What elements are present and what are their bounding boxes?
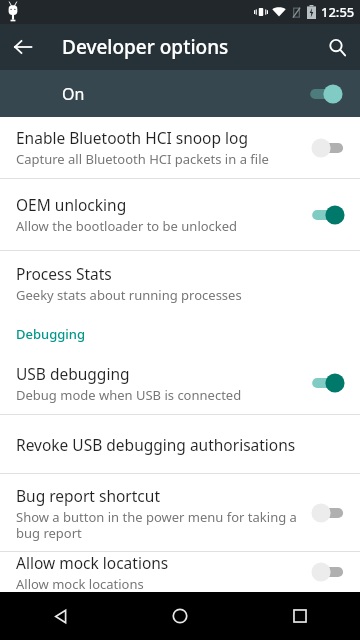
button[interactable]: Home bbox=[120, 592, 240, 640]
staticText: 12:55 bbox=[321, 3, 355, 21]
staticText: Debugging bbox=[16, 325, 86, 343]
button[interactable]: Process Stats bbox=[0, 251, 360, 315]
button[interactable]: Allow mock locations bbox=[0, 552, 360, 592]
button[interactable]: Back bbox=[0, 592, 120, 640]
staticText: Allow mock locations bbox=[16, 552, 169, 573]
button[interactable]: Recent apps bbox=[240, 592, 360, 640]
staticText: OEM unlocking bbox=[16, 194, 127, 215]
button[interactable]: Search bbox=[314, 24, 360, 70]
staticText: Process Stats bbox=[16, 263, 112, 284]
staticText: Revoke USB debugging authorisations bbox=[16, 434, 296, 455]
staticText: Allow the bootloader to be unlocked bbox=[16, 217, 238, 235]
staticText: Allow mock locations bbox=[16, 575, 144, 592]
staticText: Debug mode when USB is connected bbox=[16, 386, 242, 404]
button[interactable]: Revoke USB debugging authorisations bbox=[0, 415, 360, 473]
staticText: Developer options bbox=[62, 34, 229, 60]
button[interactable]: OEM unlocking bbox=[0, 179, 360, 250]
staticText: Bug report shortcut bbox=[16, 485, 160, 506]
button[interactable]: Enable Bluetooth HCI snoop log bbox=[0, 117, 360, 178]
button[interactable]: On bbox=[0, 70, 360, 117]
staticText: USB debugging bbox=[16, 363, 130, 384]
button[interactable]: Navigate up bbox=[0, 24, 46, 70]
button[interactable]: USB debugging bbox=[0, 352, 360, 414]
staticText: Enable Bluetooth HCI snoop log bbox=[16, 127, 248, 148]
staticText: Show a button in the power menu for taki… bbox=[16, 508, 300, 541]
staticText: Capture all Bluetooth HCI packets in a f… bbox=[16, 150, 269, 168]
staticText: Geeky stats about running processes bbox=[16, 286, 242, 304]
staticText: On bbox=[62, 83, 308, 105]
button[interactable]: Bug report shortcut bbox=[0, 474, 360, 551]
